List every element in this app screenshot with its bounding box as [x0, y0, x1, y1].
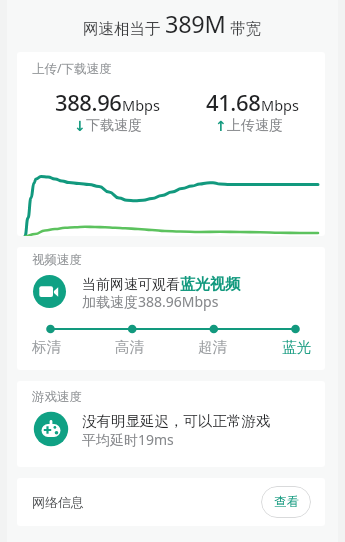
- staticText: 游戏速度: [32, 389, 82, 405]
- staticText: Mbps: [261, 95, 299, 115]
- staticText: 上传速度: [227, 117, 283, 135]
- staticText: Mbps: [122, 95, 160, 115]
- staticText: 标清: [32, 338, 61, 356]
- staticText: 查看: [274, 494, 299, 510]
- staticText: ↓: [74, 118, 86, 134]
- staticText: 上传/下载速度: [32, 60, 112, 77]
- staticText: 网络信息: [32, 494, 84, 510]
- staticText: 高清: [115, 338, 144, 356]
- staticText: 网速相当于: [83, 17, 165, 38]
- staticText: 超清: [198, 338, 227, 356]
- staticText: 加载速度388.96Mbps: [82, 292, 219, 311]
- staticText: 389M: [165, 8, 226, 40]
- staticText: 388.96: [55, 87, 122, 117]
- button[interactable]: 网络信息: [17, 478, 325, 526]
- staticText: 下载速度: [86, 117, 142, 135]
- staticText: 没有明显延迟，可以正常游戏: [82, 412, 271, 430]
- staticText: 带宽: [226, 17, 262, 38]
- staticText: 视频速度: [32, 252, 82, 268]
- staticText: 41.68: [206, 87, 261, 117]
- staticText: 平均延时19ms: [82, 430, 174, 449]
- staticText: 蓝光: [282, 338, 311, 356]
- staticText: ↑: [215, 118, 227, 134]
- button[interactable]: 查看: [261, 486, 311, 518]
- staticText: 当前网速可观看蓝光视频: [82, 275, 240, 294]
